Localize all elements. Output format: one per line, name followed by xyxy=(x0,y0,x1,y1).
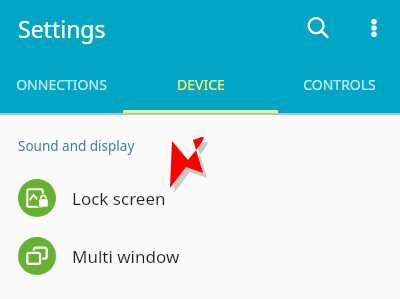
button[interactable]: Multi window xyxy=(0,227,400,285)
staticText: Lock screen xyxy=(72,187,166,210)
button[interactable]: DEVICE xyxy=(134,56,267,113)
button[interactable]: ONNECTIONS xyxy=(0,56,134,113)
button[interactable]: CONTROLS xyxy=(267,56,400,113)
button[interactable]: Search xyxy=(296,6,340,50)
staticText: ONNECTIONS xyxy=(16,75,107,94)
button[interactable]: Lock screen xyxy=(0,169,400,227)
staticText: Sound and display xyxy=(18,137,135,155)
staticText: DEVICE xyxy=(177,75,225,94)
staticText: Settings xyxy=(18,13,106,44)
staticText: Multi window xyxy=(72,245,180,268)
staticText: CONTROLS xyxy=(303,75,376,94)
button[interactable]: More options xyxy=(352,6,396,50)
